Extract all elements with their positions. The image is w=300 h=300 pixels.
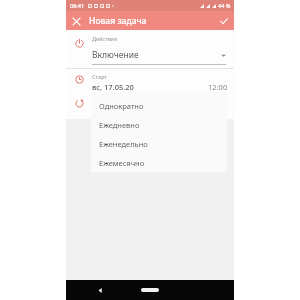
button[interactable]: Повторять [66,93,234,118]
button[interactable]: Действие [66,30,234,68]
staticText: 12:00 [208,82,228,92]
staticText: Ежедневно [99,120,140,130]
button[interactable]: Ежедневно [91,115,227,134]
button[interactable]: Однократно [91,96,227,115]
staticText: Действие [92,35,118,42]
staticText: Новая задача [89,15,147,27]
staticText: Еженедельно [99,139,148,149]
button[interactable]: Ежемесячно [91,153,227,172]
staticText: Старт [92,73,107,80]
button[interactable]: Назад [94,284,106,296]
button[interactable]: Домой [139,285,161,295]
button[interactable]: Старт [66,69,234,93]
staticText: Однократно [99,101,144,111]
staticText: вс, 17.05.20 [92,82,208,92]
staticText: 44 % [218,2,231,9]
staticText: Включение [92,49,221,61]
button[interactable]: Закрыть [69,14,83,28]
staticText: Ежемесячно [99,158,145,168]
button[interactable]: Сохранить [217,14,231,28]
staticText: 06:41 [70,2,85,9]
button[interactable]: Еженедельно [91,134,227,153]
